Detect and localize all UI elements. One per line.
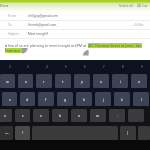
button[interactable]: c: [15, 109, 30, 122]
staticText: chillyjoy@gmail.com: [28, 14, 58, 18]
button[interactable]: 6: [75, 65, 94, 69]
staticText: A few of us are planning to meet tonight…: [5, 43, 88, 48]
staticText: 5: [65, 65, 67, 69]
staticText: h: [83, 97, 86, 102]
button[interactable]: l: [133, 92, 149, 106]
staticText: t: [62, 79, 64, 84]
button[interactable]: r: [36, 74, 52, 88]
button[interactable]: k: [114, 92, 130, 106]
button[interactable]: Done: [0, 3, 9, 7]
staticText: Subject:: [8, 32, 20, 36]
staticText: ctrl: [5, 132, 9, 135]
button[interactable]: w: [0, 74, 15, 88]
staticText: y: [81, 79, 83, 84]
button[interactable]: To:: [0, 21, 150, 29]
staticText: friends@gmail.com,: [28, 23, 57, 27]
staticText: To:: [8, 23, 13, 27]
staticText: b: [59, 113, 62, 118]
button[interactable]: i: [112, 74, 128, 88]
button[interactable]: ctrl: [0, 126, 13, 140]
staticText: w: [6, 79, 9, 84]
button[interactable]: |: [120, 126, 136, 140]
button[interactable]: s: [2, 92, 17, 106]
button[interactable]: m: [90, 109, 106, 122]
button[interactable]: h: [76, 92, 92, 106]
staticText: /: [22, 131, 24, 135]
button[interactable]: Subject:: [0, 30, 150, 38]
staticText: x: [4, 113, 6, 118]
staticText: l: [141, 97, 142, 102]
button[interactable]: .: [109, 109, 125, 122]
staticText: f: [45, 97, 47, 102]
staticText: o: [138, 79, 141, 84]
staticText: 7: [103, 65, 105, 69]
staticText: g: [64, 97, 67, 102]
staticText: 2: [9, 65, 11, 69]
button[interactable]: g: [57, 92, 73, 106]
staticText: 8: [122, 65, 124, 69]
button[interactable]: /: [15, 126, 30, 140]
button[interactable]: Select all: [119, 3, 133, 7]
staticText: .: [117, 113, 118, 118]
button[interactable]: From:: [0, 12, 150, 20]
staticText: m: [96, 113, 100, 118]
button[interactable]: 5: [56, 65, 75, 69]
staticText: Cut: [142, 3, 148, 7]
button[interactable]: x: [0, 109, 12, 122]
button[interactable]: v: [33, 109, 49, 122]
staticText: e: [25, 79, 27, 84]
button[interactable]: 8: [113, 65, 132, 69]
button[interactable]: b: [52, 109, 68, 122]
staticText: 3: [27, 65, 29, 69]
staticText: Francisco.: [5, 48, 22, 53]
button[interactable]: t: [55, 74, 71, 88]
staticText: 6: [84, 65, 86, 69]
staticText: u: [100, 79, 103, 84]
button[interactable]: y: [74, 74, 90, 88]
staticText: Meet tonight?: [28, 32, 49, 36]
staticText: 4: [46, 65, 48, 69]
button[interactable]: 3: [19, 65, 37, 69]
button[interactable]: d: [20, 92, 35, 106]
staticText: j: [103, 97, 104, 102]
staticText: s: [9, 97, 11, 102]
button[interactable]: u: [93, 74, 109, 88]
button[interactable]: o: [131, 74, 147, 88]
staticText: d: [26, 97, 29, 102]
staticText: From:: [8, 14, 17, 18]
staticText: |: [127, 131, 129, 135]
staticText: r: [43, 79, 45, 84]
button[interactable]: f: [38, 92, 54, 106]
staticText: c: [22, 113, 24, 118]
staticText: 9: [141, 65, 143, 69]
button[interactable]: Cut: [137, 3, 148, 7]
staticText: i: [120, 79, 121, 84]
staticText: v: [40, 113, 42, 118]
button[interactable]: n: [71, 109, 87, 122]
button[interactable]: 2: [1, 65, 19, 69]
staticText: k: [121, 97, 123, 102]
button[interactable]: e: [18, 74, 33, 88]
button[interactable]: 9: [132, 65, 150, 69]
button[interactable]: 4: [37, 65, 56, 69]
staticText: 401 Chestnut Street at Jones, San: [88, 43, 142, 48]
staticText: +Cc/Bcc: [133, 23, 144, 27]
button[interactable]: j: [95, 92, 111, 106]
button[interactable]: 7: [94, 65, 113, 69]
staticText: n: [78, 113, 81, 118]
